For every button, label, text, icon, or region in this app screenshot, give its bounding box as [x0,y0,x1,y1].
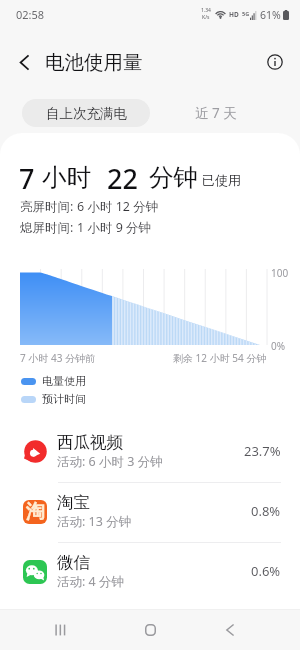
button[interactable]: Recents [36,610,84,650]
button[interactable]: Information [260,47,290,77]
staticText: 6 小时 12 分钟 [77,198,159,215]
staticText: 已使用 [202,172,241,188]
staticText: 活动: 13 分钟 [57,513,132,530]
staticText: 0% [271,339,286,353]
staticText: 亮屏时间: [20,198,74,215]
staticText: 0.6% [251,562,281,580]
button[interactable]: Back [206,610,254,650]
staticText: 23.7% [244,442,281,460]
button[interactable]: 近 7 天 [178,99,254,127]
button[interactable]: 微信 [0,543,300,602]
staticText: 分钟 [149,162,198,192]
staticText: 22 [107,160,138,190]
button[interactable]: Back [9,47,39,77]
button[interactable]: 自上次充满电 [22,99,150,127]
staticText: 淘 [26,500,45,524]
staticText: 小时 [42,162,91,192]
staticText: 电池使用量 [45,50,143,75]
staticText: 活动: 6 小时 3 分钟 [57,453,163,470]
staticText: 熄屏时间: [20,219,74,236]
staticText: 活动: 4 分钟 [57,573,125,590]
staticText: 02:58 [16,7,45,22]
staticText: 西瓜视频 [57,432,123,453]
staticText: 微信 [57,552,90,573]
staticText: 100 [271,266,289,280]
staticText: 61% [260,8,281,22]
staticText: HD [229,10,239,19]
staticText: K/s [202,14,210,21]
staticText: 淘宝 [57,492,90,513]
staticText: 近 7 天 [195,104,237,122]
staticText: 0.8% [251,502,281,520]
button[interactable]: 淘 [0,483,300,542]
staticText: 7 [19,160,35,190]
staticText: 预计时间 [42,392,86,406]
staticText: 剩余 12 小时 54 分钟 [173,351,267,365]
staticText: 7 小时 43 分钟前 [20,351,95,365]
button[interactable]: Home [126,610,174,650]
staticText: 1 小时 9 分钟 [77,219,152,236]
staticText: 5G [242,10,250,17]
staticText: 自上次充满电 [46,105,127,122]
staticText: 1.34 [201,7,211,14]
button[interactable]: 西瓜视频 [0,423,300,482]
staticText: 电量使用 [42,374,86,388]
